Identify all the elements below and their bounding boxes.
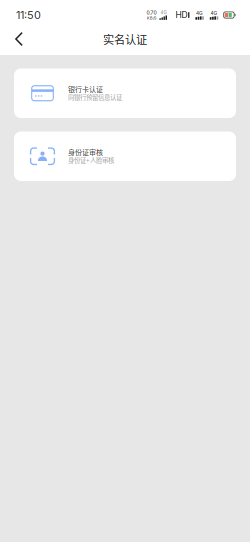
staticText: 4G	[160, 10, 166, 15]
button[interactable]: 身份证审核	[14, 131, 236, 181]
staticText: 0.70	[146, 10, 156, 16]
staticText: 4G	[210, 10, 217, 16]
staticText: 身份证审核	[68, 147, 103, 157]
staticText: 向银行预留信息认证	[68, 92, 122, 102]
staticText: HD	[175, 10, 187, 20]
staticText: 实名认证	[103, 31, 147, 47]
staticText: KB/S	[147, 16, 156, 20]
staticText: 身份证+人脸审核	[68, 155, 114, 165]
button[interactable]: 银行卡认证	[14, 68, 236, 118]
staticText: 11:50	[16, 8, 41, 22]
button[interactable]: Back	[8, 30, 30, 48]
staticText: 银行卡认证	[68, 84, 103, 94]
staticText: 4G	[196, 10, 203, 16]
